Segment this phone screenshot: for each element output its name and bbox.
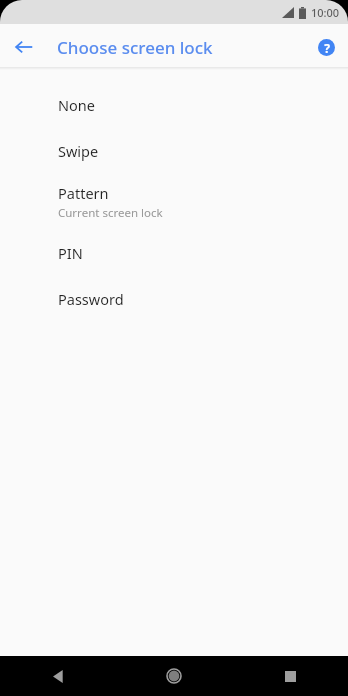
- button[interactable]: Pattern: [0, 174, 348, 230]
- button[interactable]: Password: [0, 276, 348, 322]
- staticText: Swipe: [58, 141, 99, 161]
- staticText: Choose screen lock: [57, 36, 213, 59]
- staticText: ?: [324, 40, 330, 56]
- button[interactable]: Swipe: [0, 128, 348, 174]
- button[interactable]: Navigate up: [0, 24, 48, 70]
- button[interactable]: PIN: [0, 230, 348, 276]
- button[interactable]: None: [0, 82, 348, 128]
- button[interactable]: Recent apps: [232, 656, 348, 696]
- button[interactable]: Back: [0, 656, 116, 696]
- staticText: None: [58, 95, 95, 115]
- staticText: Current screen lock: [58, 205, 163, 221]
- staticText: Pattern: [58, 183, 109, 203]
- staticText: 10:00: [311, 5, 340, 20]
- button[interactable]: Help: [304, 25, 348, 69]
- staticText: Password: [58, 289, 124, 309]
- button[interactable]: Home: [116, 656, 232, 696]
- staticText: PIN: [58, 243, 83, 263]
